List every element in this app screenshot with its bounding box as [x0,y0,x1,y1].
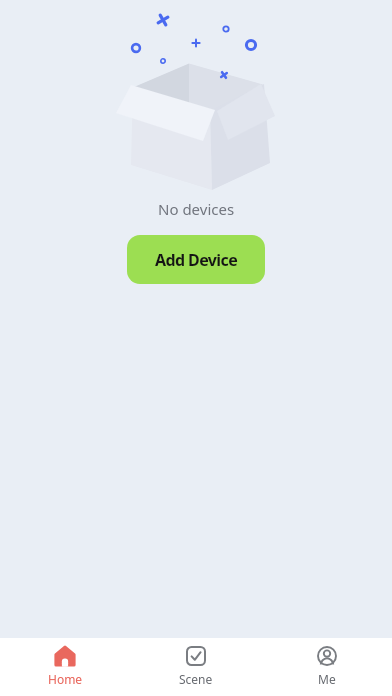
button[interactable]: Me [261,638,392,696]
button[interactable]: Scene [130,638,261,696]
staticText: Home [48,671,83,687]
staticText: Me [318,671,336,687]
staticText: No devices [158,199,235,219]
staticText: Scene [179,671,213,687]
button[interactable]: Add Device [127,235,265,284]
staticText: Add Device [155,249,238,271]
button[interactable]: Home [0,638,130,696]
